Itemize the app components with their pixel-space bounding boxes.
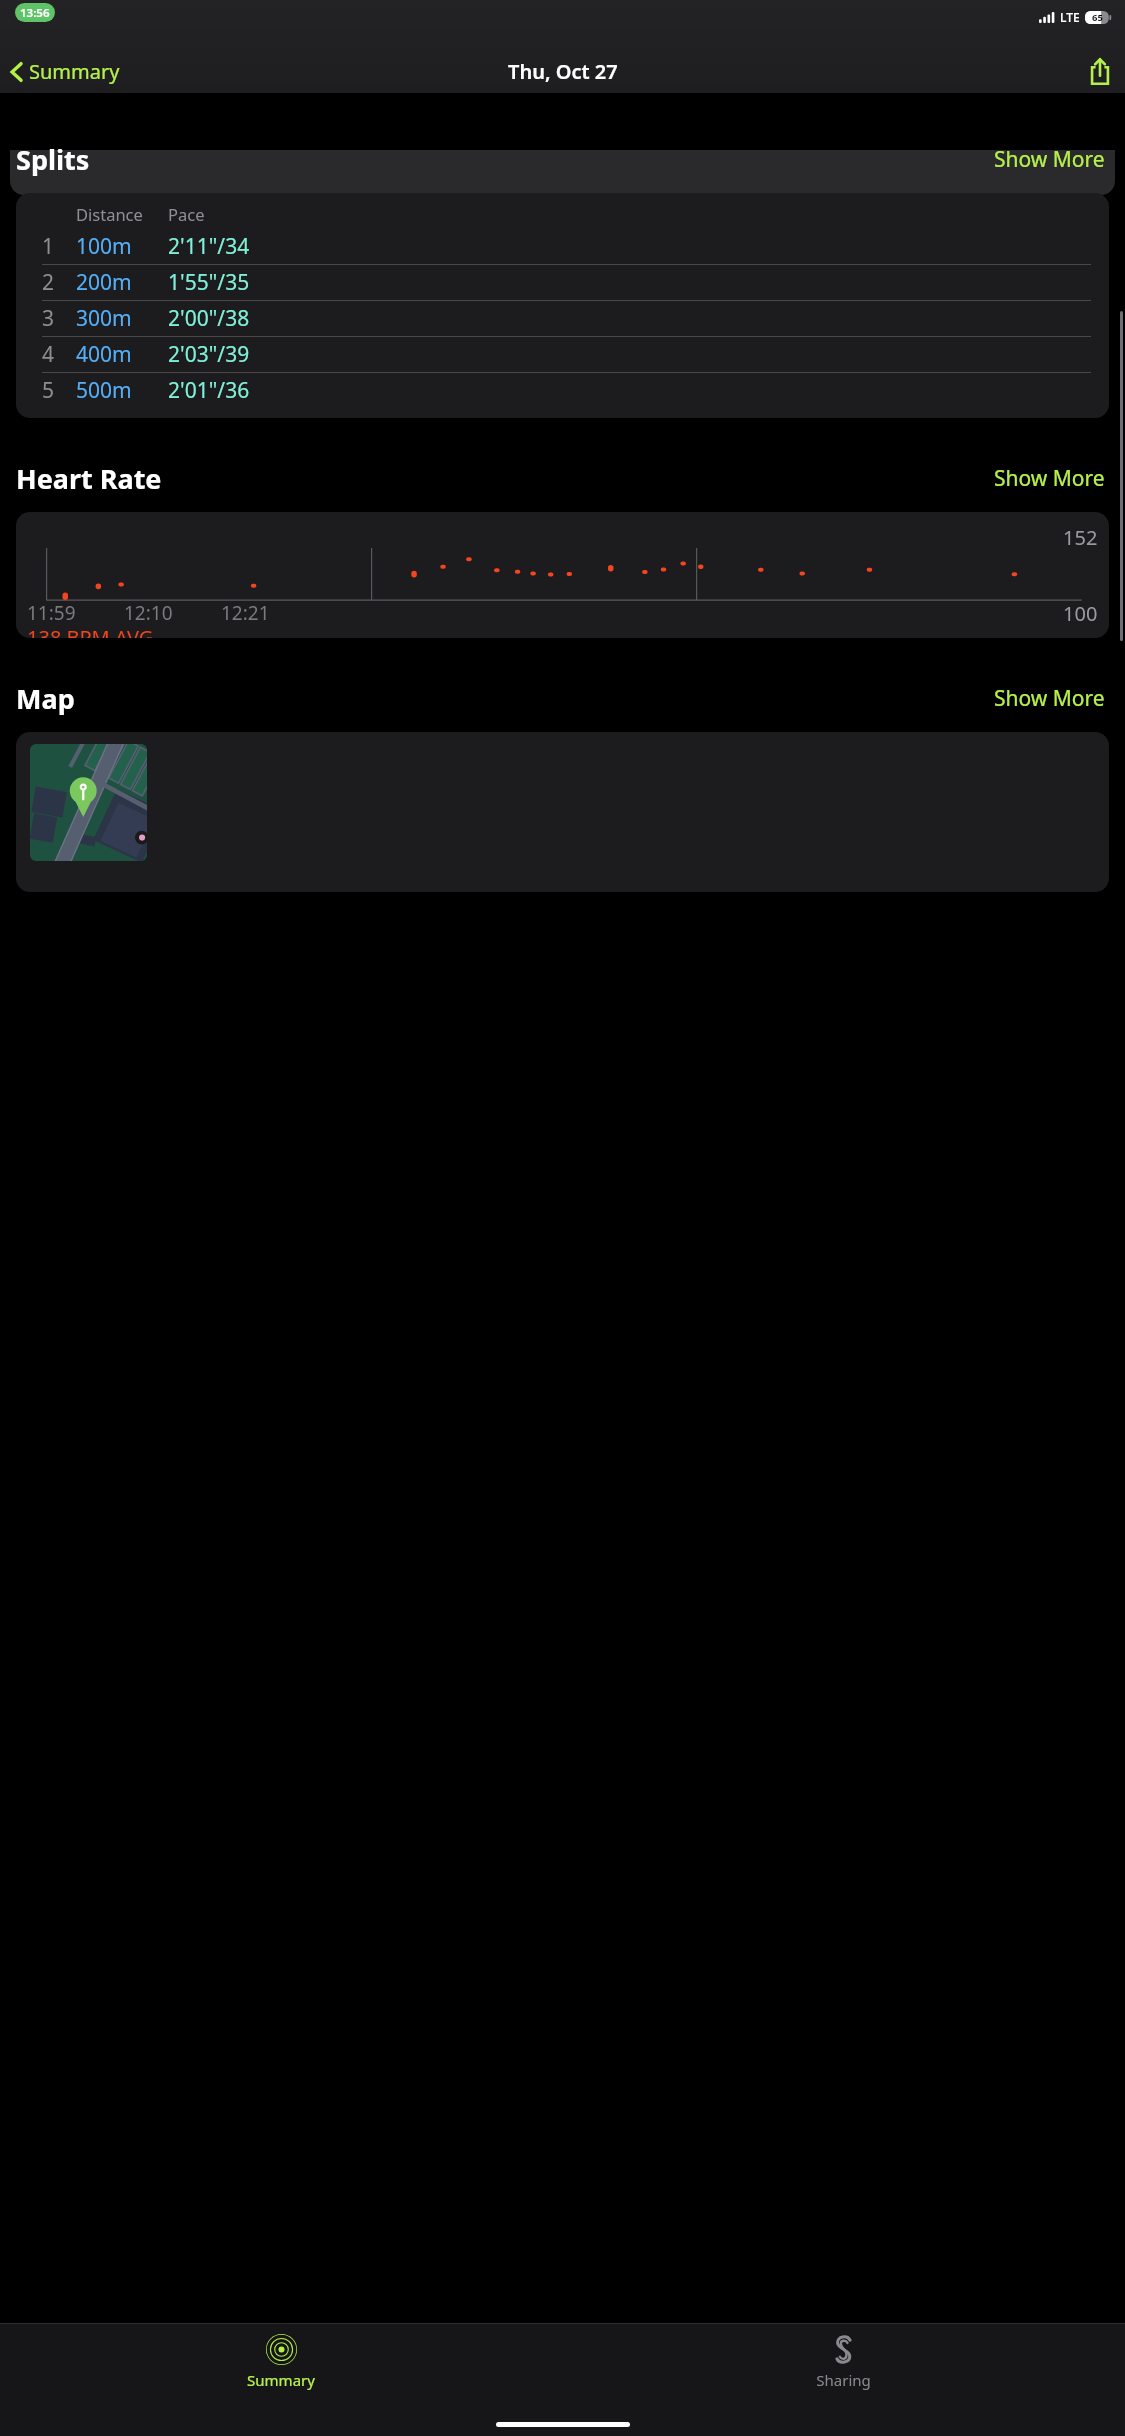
staticText: Show More xyxy=(994,464,1105,493)
button[interactable]: Sharing xyxy=(562,2330,1125,2393)
button[interactable]: Share xyxy=(1075,52,1125,91)
staticText: Show More xyxy=(994,145,1105,174)
staticText: 138 BPM AVG xyxy=(27,624,154,638)
staticText: 100m xyxy=(76,232,168,261)
button[interactable] xyxy=(16,732,1109,892)
staticText: Splits xyxy=(16,141,90,178)
staticText: 2'01"/36 xyxy=(168,376,250,405)
staticText: 11:59 xyxy=(27,600,76,626)
button[interactable]: 5 xyxy=(42,373,1091,408)
staticText: 65 xyxy=(1092,11,1103,24)
button[interactable]: 2 xyxy=(42,265,1091,300)
button[interactable]: Show More xyxy=(990,141,1109,178)
staticText: 2'11"/34 xyxy=(168,232,250,261)
staticText: Summary xyxy=(29,58,120,85)
staticText: 152 xyxy=(1063,524,1098,551)
staticText: 500m xyxy=(76,376,168,405)
staticText: 2'03"/39 xyxy=(168,340,250,369)
staticText: 2'00"/38 xyxy=(168,304,250,333)
button[interactable]: Summary xyxy=(0,54,128,89)
staticText: 2 xyxy=(42,268,76,297)
staticText: 100 xyxy=(1063,600,1098,627)
staticText: 200m xyxy=(76,268,168,297)
staticText: Summary xyxy=(247,2370,315,2390)
staticText: 300m xyxy=(76,304,168,333)
button[interactable]: 4 xyxy=(42,337,1091,372)
staticText: Show More xyxy=(994,684,1105,713)
button[interactable]: 3 xyxy=(42,301,1091,336)
staticText: 400m xyxy=(76,340,168,369)
staticText: 1 xyxy=(42,232,76,261)
staticText: LTE xyxy=(1060,9,1080,25)
staticText: Heart Rate xyxy=(16,460,162,497)
staticText: 13:56 xyxy=(20,5,50,21)
staticText: 12:21 xyxy=(221,600,270,626)
staticText: Sharing xyxy=(816,2370,871,2390)
staticText: Distance xyxy=(76,203,168,225)
button[interactable]: Show More xyxy=(990,460,1109,497)
staticText: 1'55"/35 xyxy=(168,268,250,297)
staticText: Map xyxy=(16,680,75,717)
staticText: 3 xyxy=(42,304,76,333)
button[interactable]: 1 xyxy=(42,229,1091,264)
staticText: 5 xyxy=(42,376,76,405)
staticText: Thu, Oct 27 xyxy=(508,58,618,85)
button[interactable]: Summary xyxy=(0,2330,562,2393)
button[interactable]: Show More xyxy=(990,680,1109,717)
staticText: 12:10 xyxy=(124,600,173,626)
staticText: 4 xyxy=(42,340,76,369)
staticText: Pace xyxy=(168,203,205,225)
